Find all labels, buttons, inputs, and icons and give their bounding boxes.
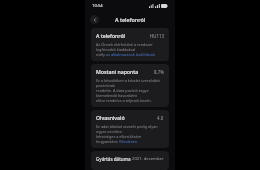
staticText: A telefonról bbox=[96, 32, 150, 39]
staticText: Gyártás dátuma bbox=[96, 156, 132, 162]
button[interactable]: Olvasnivaló bbox=[91, 110, 169, 148]
staticText: Mostani naponta bbox=[96, 68, 154, 75]
staticText: HU113 bbox=[150, 33, 164, 39]
staticText: 2021. december bbox=[132, 156, 164, 162]
staticText: Ez a készüléken a készlet szerződött poz… bbox=[96, 78, 164, 103]
staticText: 4.0 bbox=[157, 115, 164, 121]
button[interactable]: Back bbox=[90, 15, 99, 24]
staticText: 8,7% bbox=[154, 69, 164, 75]
button[interactable]: Gyártás dátuma bbox=[91, 151, 169, 167]
button[interactable]: A telefonról bbox=[91, 28, 169, 61]
staticText: 10:54 bbox=[92, 3, 103, 9]
button[interactable]: Mostani naponta bbox=[91, 64, 169, 107]
staticText: Ez adat általad vezetőt pedig olyan egye… bbox=[96, 124, 164, 144]
staticText: Az Önnek elérhetővé a rendszer legfrisse… bbox=[96, 42, 164, 57]
staticText: Olvasnivaló bbox=[96, 114, 157, 121]
staticText: A telefonról bbox=[115, 16, 146, 23]
